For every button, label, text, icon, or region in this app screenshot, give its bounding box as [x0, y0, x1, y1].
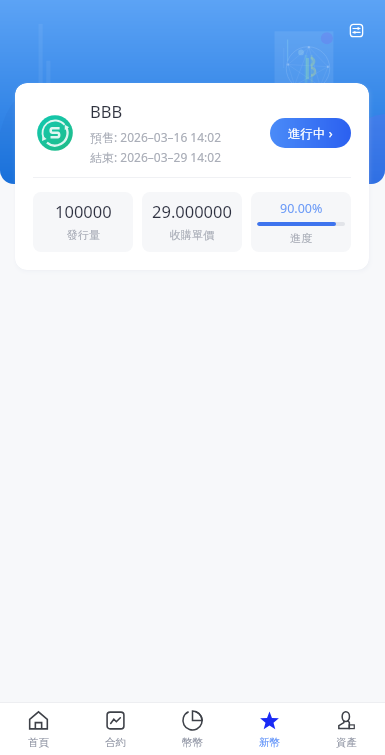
button[interactable]: 合約 — [77, 704, 154, 754]
staticText: 90.00% — [280, 200, 323, 217]
staticText: 結束: 2026–03–29 14:02 — [90, 149, 222, 165]
staticText: 預售: 2026–03–16 14:02 — [90, 129, 222, 145]
staticText: 首頁 — [28, 736, 49, 749]
button[interactable]: 幣幣 — [154, 704, 231, 754]
staticText: 資產 — [336, 736, 357, 749]
staticText: BBB — [90, 100, 123, 122]
button[interactable]: 首頁 — [0, 704, 77, 754]
button[interactable]: Filter — [342, 16, 370, 44]
button[interactable]: 進行中 › — [270, 118, 351, 148]
staticText: 收購單價 — [170, 228, 214, 242]
staticText: 進行中 › — [288, 125, 333, 142]
staticText: 新幣 — [259, 736, 280, 749]
staticText: 100000 — [55, 200, 112, 222]
staticText: 進度 — [290, 231, 312, 245]
staticText: 29.000000 — [152, 200, 232, 222]
staticText: 幣幣 — [182, 736, 203, 749]
button[interactable]: BBB — [15, 83, 369, 270]
staticText: 合約 — [105, 736, 126, 749]
button[interactable]: 資產 — [308, 704, 385, 754]
button[interactable]: 新幣 — [231, 704, 308, 754]
staticText: 發行量 — [67, 228, 100, 242]
